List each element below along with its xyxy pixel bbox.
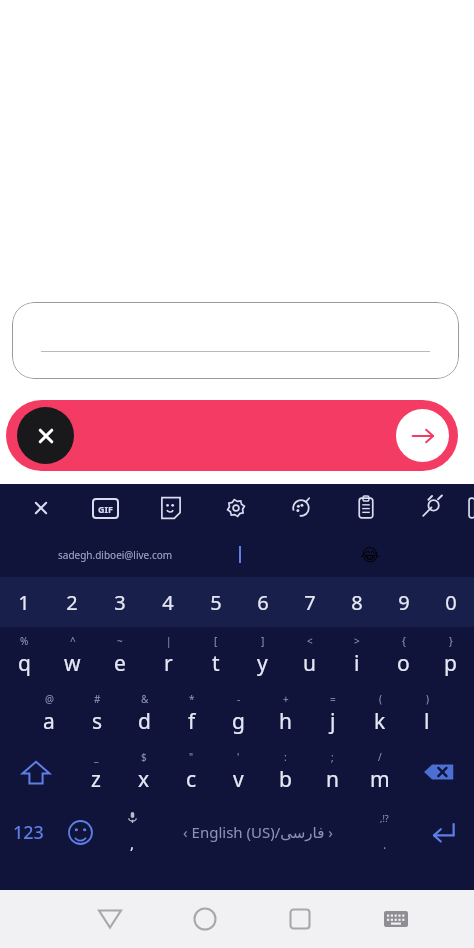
button[interactable]: Enter <box>412 801 474 863</box>
staticText: 9 <box>398 589 410 616</box>
staticText: < <box>307 634 313 648</box>
button[interactable]: sadegh.diboei@live.com <box>58 548 173 562</box>
button[interactable]: Clipboard <box>333 484 398 532</box>
staticText: y <box>257 649 268 678</box>
staticText: # <box>94 692 101 706</box>
button[interactable]: { <box>380 627 427 685</box>
button[interactable]: Close <box>17 407 74 464</box>
button[interactable]: ) <box>403 685 450 743</box>
button[interactable]: Backspace <box>403 743 474 801</box>
staticText: / <box>378 750 382 764</box>
button[interactable]: Home <box>157 890 252 948</box>
button[interactable]: Back <box>62 890 157 948</box>
staticText: w <box>64 649 81 678</box>
staticText: % <box>20 634 29 648</box>
button[interactable]: < <box>286 627 333 685</box>
button[interactable]: 6 <box>239 577 286 627</box>
button[interactable]: } <box>427 627 474 685</box>
button[interactable]: @ <box>25 685 73 743</box>
button[interactable]: Send <box>396 409 449 462</box>
button[interactable]: Period <box>356 801 412 863</box>
staticText: 2 <box>66 589 78 616</box>
button[interactable]: 123 <box>0 801 56 863</box>
staticText: } <box>449 634 453 648</box>
staticText: | <box>166 634 172 648</box>
staticText: ' <box>237 750 240 764</box>
button[interactable]: 7 <box>286 577 333 627</box>
staticText: ) <box>426 692 429 706</box>
staticText: = <box>330 692 336 706</box>
button[interactable]: * <box>168 685 215 743</box>
button[interactable]: % <box>0 627 48 685</box>
button[interactable]: 2 <box>48 577 96 627</box>
button[interactable]: # <box>73 685 121 743</box>
staticText: ,!? <box>380 812 389 824</box>
staticText: ^ <box>70 634 76 648</box>
staticText: 3 <box>114 589 126 616</box>
button[interactable]: Stickers <box>138 484 203 532</box>
staticText: p <box>444 649 457 678</box>
button[interactable]: 8 <box>333 577 380 627</box>
button[interactable]: _ <box>72 743 120 801</box>
button[interactable]: 1 <box>0 577 48 627</box>
button[interactable]: = <box>309 685 356 743</box>
staticText: a <box>43 707 55 736</box>
button[interactable]: 4 <box>144 577 192 627</box>
button[interactable]: [ <box>192 627 239 685</box>
button[interactable]: + <box>262 685 309 743</box>
staticText: k <box>374 707 386 736</box>
staticText: ~ <box>117 634 123 648</box>
button[interactable]: 9 <box>380 577 427 627</box>
staticText: m <box>370 765 390 794</box>
button[interactable]: : <box>262 743 309 801</box>
button[interactable]: Pin <box>398 484 463 532</box>
button[interactable]: Settings <box>203 484 268 532</box>
button[interactable]: GIF <box>73 484 138 532</box>
button[interactable]: 5 <box>192 577 239 627</box>
button[interactable]: Recents <box>252 890 348 948</box>
button[interactable]: ' <box>215 743 262 801</box>
staticText: : <box>284 750 287 764</box>
button[interactable]: More <box>463 484 474 532</box>
staticText: 1 <box>18 589 30 616</box>
staticText: d <box>138 707 151 736</box>
staticText: z <box>91 765 101 794</box>
button[interactable]: ^ <box>48 627 96 685</box>
button[interactable]: Theme <box>268 484 333 532</box>
button[interactable]: ] <box>239 627 286 685</box>
staticText: n <box>326 765 339 794</box>
button[interactable]: Voice input and comma <box>104 801 160 863</box>
staticText: ] <box>261 634 265 648</box>
button[interactable]: 3 <box>96 577 144 627</box>
button[interactable]: Close keyboard <box>8 484 73 532</box>
button[interactable]: " <box>168 743 215 801</box>
button[interactable]: & <box>121 685 168 743</box>
button[interactable]: Hide keyboard <box>348 890 444 948</box>
button[interactable]: $ <box>120 743 168 801</box>
staticText: > <box>354 634 360 648</box>
staticText: 5 <box>210 589 222 616</box>
button[interactable]: ‹ English (US)/فارسی › <box>160 801 356 863</box>
button[interactable]: Shift <box>0 743 72 801</box>
staticText: $ <box>141 750 147 764</box>
button[interactable]: ( <box>356 685 403 743</box>
button[interactable]: ~ <box>96 627 144 685</box>
button[interactable]: / <box>356 743 403 801</box>
staticText: , <box>130 833 135 853</box>
staticText: 4 <box>162 589 174 616</box>
staticText: f <box>188 707 196 736</box>
button[interactable]: ; <box>309 743 356 801</box>
button[interactable]: > <box>333 627 380 685</box>
button[interactable]: 0 <box>427 577 474 627</box>
staticText: . <box>383 836 387 852</box>
staticText: " <box>189 750 194 764</box>
staticText: 123 <box>13 820 44 845</box>
button[interactable] <box>12 302 459 379</box>
staticText: _ <box>94 750 99 764</box>
button[interactable]: - <box>215 685 262 743</box>
staticText: h <box>279 707 292 736</box>
button[interactable]: 😂 <box>360 545 380 565</box>
button[interactable]: | <box>144 627 192 685</box>
staticText: e <box>114 649 126 678</box>
button[interactable]: Emoji <box>56 801 104 863</box>
